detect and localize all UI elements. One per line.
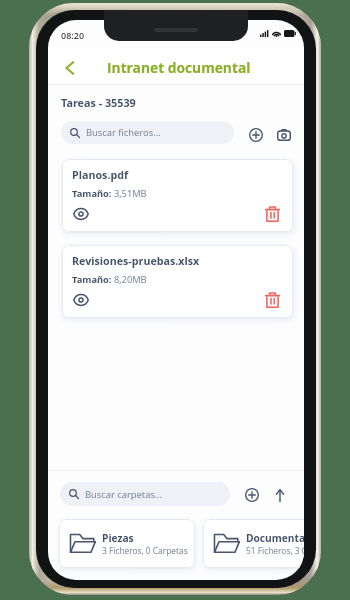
button[interactable]: Add file [246,125,265,144]
staticText: Tamaño: [72,187,114,200]
button[interactable]: View [70,203,92,225]
staticText: Intranet documental [107,58,251,77]
button[interactable]: Add folder [242,485,262,505]
staticText: Buscar carpetas... [85,488,163,501]
button[interactable]: Documentación [203,519,304,568]
staticText: 51 Ficheros, 3 Carpetas [246,545,304,556]
staticText: Documentación [246,531,304,545]
button[interactable]: Buscar carpetas... [60,482,230,506]
button[interactable]: Delete [261,203,283,225]
button[interactable]: Piezas [59,519,195,568]
staticText: Planos.pdf [72,168,129,183]
button[interactable]: Planos.pdf [62,159,293,232]
button[interactable]: Buscar ficheros... [61,121,234,144]
button[interactable]: Back [56,54,84,82]
staticText: Tareas - 35539 [61,95,136,110]
button[interactable]: Revisiones-pruebas.xlsx [62,245,293,318]
staticText: Piezas [102,531,134,545]
button[interactable]: View [70,289,92,311]
button[interactable]: Delete [261,289,283,311]
button[interactable]: Camera [274,125,294,145]
staticText: 3,51MB [114,187,147,200]
staticText: Tamaño: [72,273,114,286]
staticText: Revisiones-pruebas.xlsx [72,254,200,269]
staticText: 08:20 [61,29,85,41]
staticText: Buscar ficheros... [86,126,161,139]
button[interactable]: Go up [270,485,290,505]
staticText: 8,20MB [114,273,147,286]
staticText: 3 Ficheros, 0 Carpetas [102,545,188,556]
